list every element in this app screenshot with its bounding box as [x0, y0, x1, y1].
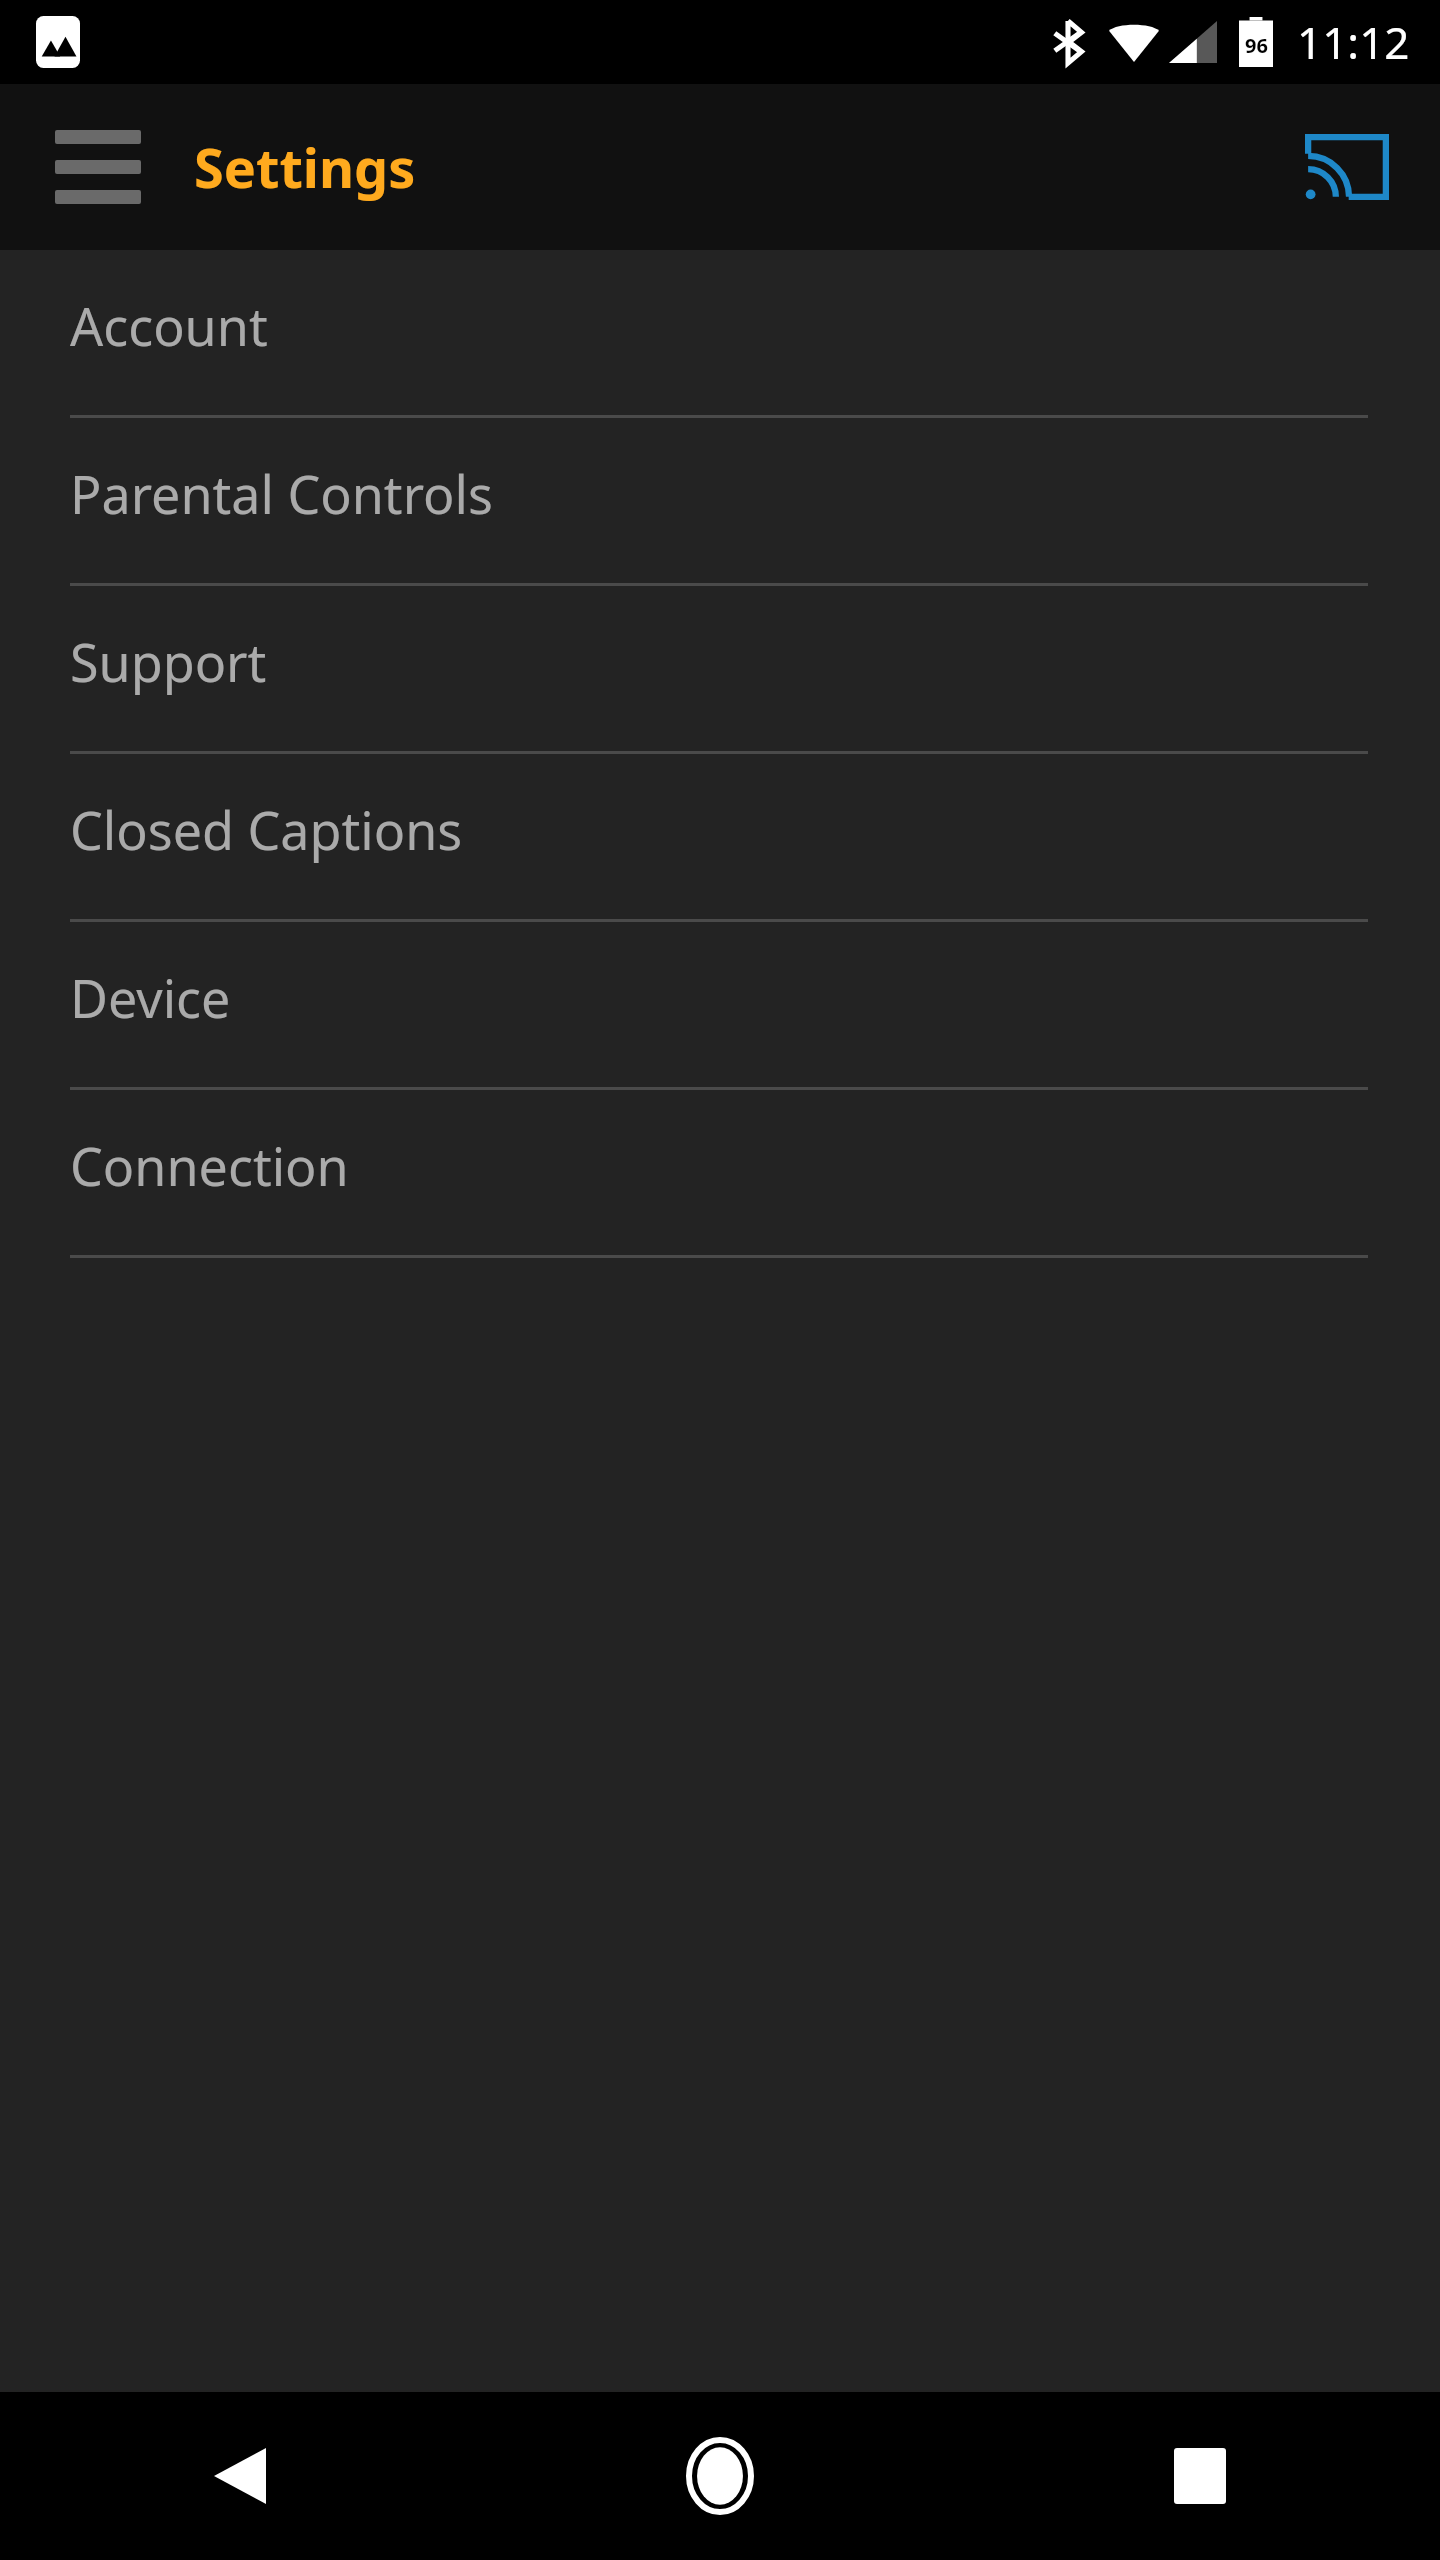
staticText: Closed Captions	[70, 794, 463, 865]
button[interactable]: Parental Controls	[0, 418, 1440, 586]
staticText: 96	[1245, 32, 1268, 59]
button[interactable]: Account	[0, 250, 1440, 418]
staticText: Support	[70, 626, 267, 697]
button[interactable]: Device	[0, 922, 1440, 1090]
button[interactable]: Open navigation menu	[24, 107, 172, 227]
staticText: Device	[70, 962, 231, 1033]
staticText: 11:12	[1297, 12, 1410, 72]
button[interactable]: Closed Captions	[0, 754, 1440, 922]
staticText: Parental Controls	[70, 458, 493, 529]
staticText: Connection	[70, 1130, 349, 1201]
staticText: Settings	[194, 130, 416, 204]
button[interactable]: Support	[0, 586, 1440, 754]
staticText: Account	[70, 290, 268, 361]
button[interactable]: Back	[0, 2392, 480, 2560]
button[interactable]: Connection	[0, 1090, 1440, 1258]
button[interactable]: Recent apps	[960, 2392, 1440, 2560]
button[interactable]: Home	[480, 2392, 960, 2560]
button[interactable]: Cast	[1282, 107, 1412, 227]
